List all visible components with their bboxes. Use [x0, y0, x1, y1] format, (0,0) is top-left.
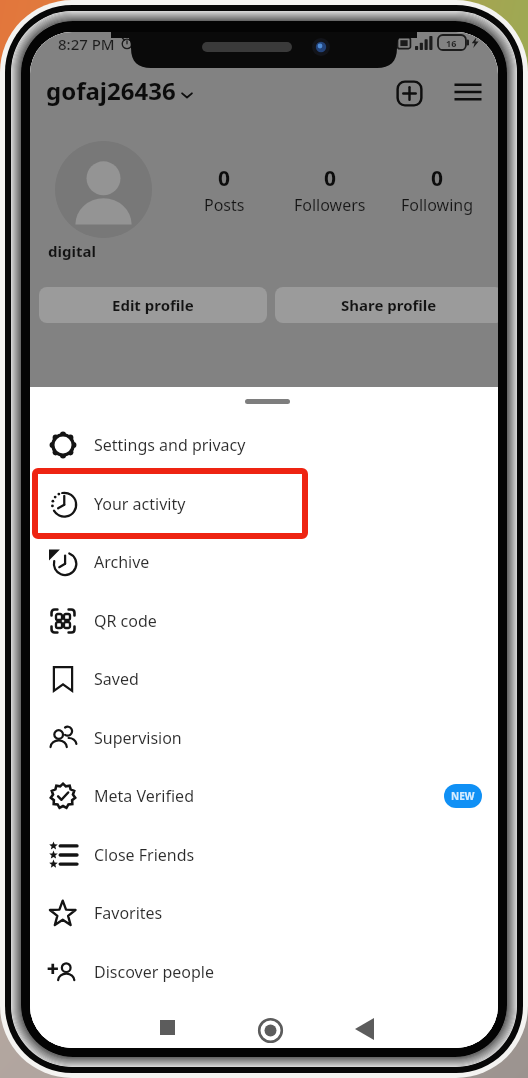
button[interactable]: Home	[246, 1006, 294, 1048]
button[interactable]: Saved	[30, 650, 498, 708]
button[interactable]: New post	[392, 76, 426, 110]
staticText: digital	[48, 241, 96, 261]
staticText: NEW	[451, 789, 475, 803]
staticText: QR code	[94, 610, 157, 632]
staticText: Favorites	[94, 902, 163, 924]
staticText: 8:27 PM	[58, 34, 115, 54]
button[interactable]: 0	[164, 164, 284, 216]
button[interactable]: Recents	[143, 1003, 191, 1048]
button[interactable]: Share profile	[275, 287, 498, 323]
button[interactable]: Archive	[30, 533, 498, 591]
staticText: Your activity	[94, 493, 186, 515]
button[interactable]: Menu	[451, 75, 485, 109]
button[interactable]: Settings and privacy	[30, 416, 498, 474]
staticText: Archive	[94, 551, 150, 573]
button[interactable]: Profile photo	[55, 141, 152, 238]
staticText: gofaj26436	[46, 74, 176, 107]
button[interactable]: Supervision	[30, 709, 498, 767]
button[interactable]: Your activity	[30, 475, 498, 533]
button[interactable]: Discover people	[30, 943, 498, 1001]
button[interactable]: Favorites	[30, 884, 498, 942]
staticText: 0	[431, 164, 444, 193]
button[interactable]: 0	[270, 164, 390, 216]
button[interactable]: Meta Verified	[30, 767, 498, 825]
button[interactable]: Edit profile	[39, 287, 267, 323]
staticText: Settings and privacy	[94, 434, 246, 456]
staticText: Following	[401, 194, 474, 216]
staticText: Share profile	[341, 295, 437, 315]
staticText: 16	[446, 37, 457, 49]
staticText: Saved	[94, 668, 139, 690]
button[interactable]: Close Friends	[30, 826, 498, 884]
staticText: 0	[324, 164, 337, 193]
staticText: Supervision	[94, 727, 182, 749]
staticText: Discover people	[94, 961, 214, 983]
staticText: Edit profile	[112, 295, 194, 315]
button[interactable]: Switch account	[176, 84, 198, 106]
button[interactable]: QR code	[30, 592, 498, 650]
staticText: Posts	[204, 194, 245, 216]
button[interactable]: 0	[377, 164, 497, 216]
staticText: Meta Verified	[94, 785, 194, 807]
staticText: Followers	[294, 194, 366, 216]
staticText: 0	[218, 164, 231, 193]
button[interactable]: Back	[340, 1005, 388, 1048]
staticText: Close Friends	[94, 844, 195, 866]
